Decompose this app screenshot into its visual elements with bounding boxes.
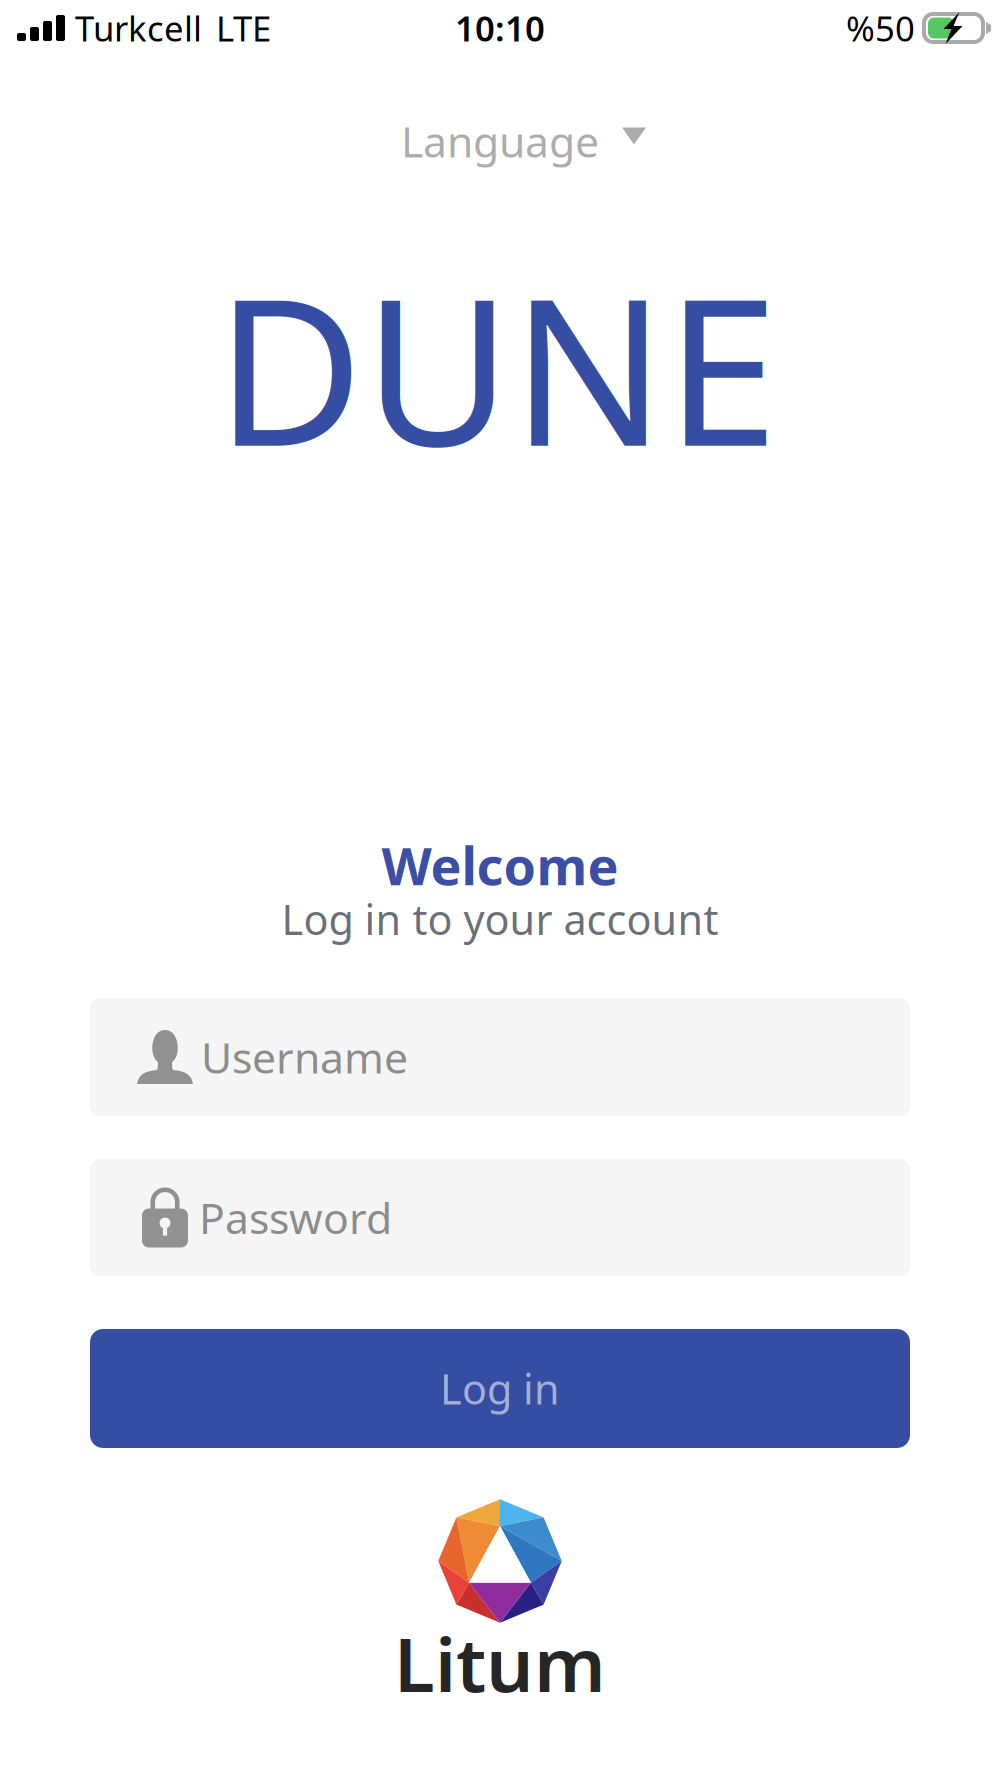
staticText: Username	[201, 1029, 408, 1085]
staticText: %50	[846, 5, 915, 51]
staticText: Welcome	[381, 830, 618, 900]
staticText: LTE	[216, 5, 271, 51]
staticText: Language	[401, 113, 599, 169]
staticText: Log in	[440, 1361, 560, 1416]
staticText: Litum	[394, 1613, 606, 1713]
staticText: Turkcell	[75, 5, 202, 51]
staticText: 10:10	[455, 5, 545, 51]
staticText: DUNE	[215, 232, 778, 501]
staticText: Log in to your account	[281, 892, 718, 946]
button[interactable]: Log in	[90, 1329, 910, 1448]
button[interactable]: Language	[377, 113, 623, 169]
button[interactable]: Password	[90, 1159, 910, 1276]
button[interactable]: Username	[90, 998, 910, 1116]
staticText: Password	[199, 1189, 392, 1246]
